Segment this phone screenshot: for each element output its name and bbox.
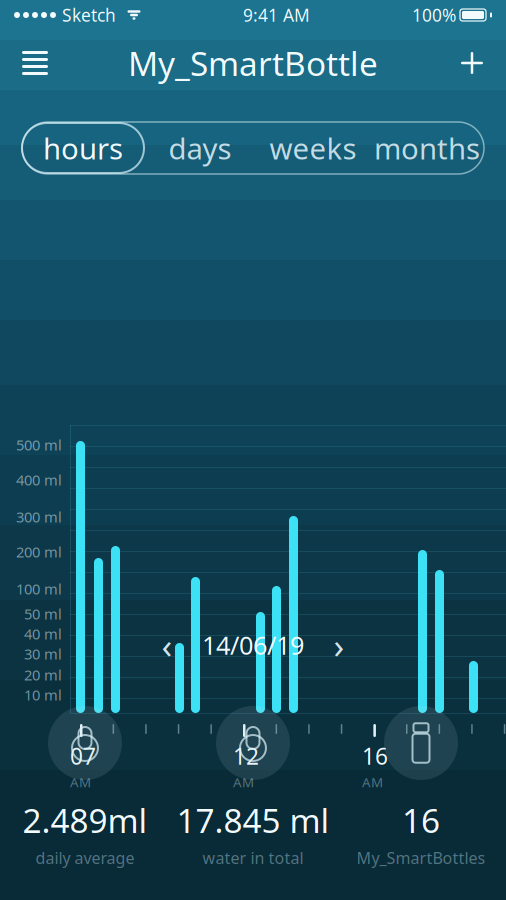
- button[interactable]: Next day: [322, 628, 356, 662]
- button[interactable]: Add: [450, 41, 494, 85]
- staticText: 16: [362, 741, 388, 771]
- staticText: 100%: [412, 3, 456, 26]
- button[interactable]: days: [144, 123, 256, 173]
- staticText: weeks: [269, 128, 356, 167]
- button[interactable]: weeks: [256, 123, 370, 173]
- staticText: 10 ml: [24, 685, 62, 704]
- staticText: 17.845 ml: [176, 798, 329, 842]
- staticText: 12: [233, 741, 259, 771]
- staticText: 2.489ml: [22, 798, 147, 842]
- button[interactable]: Menu: [12, 41, 58, 85]
- staticText: water in total: [202, 847, 303, 868]
- staticText: 500 ml: [16, 435, 62, 454]
- staticText: 30 ml: [24, 644, 62, 663]
- staticText: 300 ml: [16, 507, 62, 526]
- button[interactable]: months: [370, 123, 484, 173]
- staticText: ›: [333, 622, 344, 668]
- button[interactable]: 17.845 ml: [169, 706, 337, 868]
- staticText: 14/06/19: [202, 628, 304, 662]
- staticText: 200 ml: [16, 542, 62, 561]
- staticText: daily average: [35, 847, 134, 868]
- staticText: ‹: [161, 622, 172, 668]
- staticText: Sketch: [62, 3, 116, 26]
- staticText: AM: [233, 773, 254, 791]
- staticText: 9:41 AM: [243, 3, 310, 26]
- staticText: 100 ml: [16, 579, 62, 598]
- staticText: 20 ml: [24, 665, 62, 684]
- staticText: hours: [43, 128, 123, 167]
- staticText: 07: [70, 741, 96, 771]
- staticText: My_SmartBottles: [356, 847, 485, 868]
- staticText: 40 ml: [24, 624, 62, 643]
- button[interactable]: hours: [22, 123, 144, 173]
- staticText: 400 ml: [16, 470, 62, 489]
- staticText: 50 ml: [24, 604, 62, 623]
- staticText: days: [168, 128, 231, 167]
- button[interactable]: 16: [337, 706, 505, 868]
- staticText: months: [374, 128, 480, 167]
- staticText: 16: [402, 798, 440, 842]
- button[interactable]: Previous day: [150, 628, 184, 662]
- staticText: AM: [70, 773, 91, 791]
- staticText: My_SmartBottle: [128, 41, 378, 85]
- staticText: AM: [362, 773, 383, 791]
- button[interactable]: 2.489ml: [1, 706, 169, 868]
